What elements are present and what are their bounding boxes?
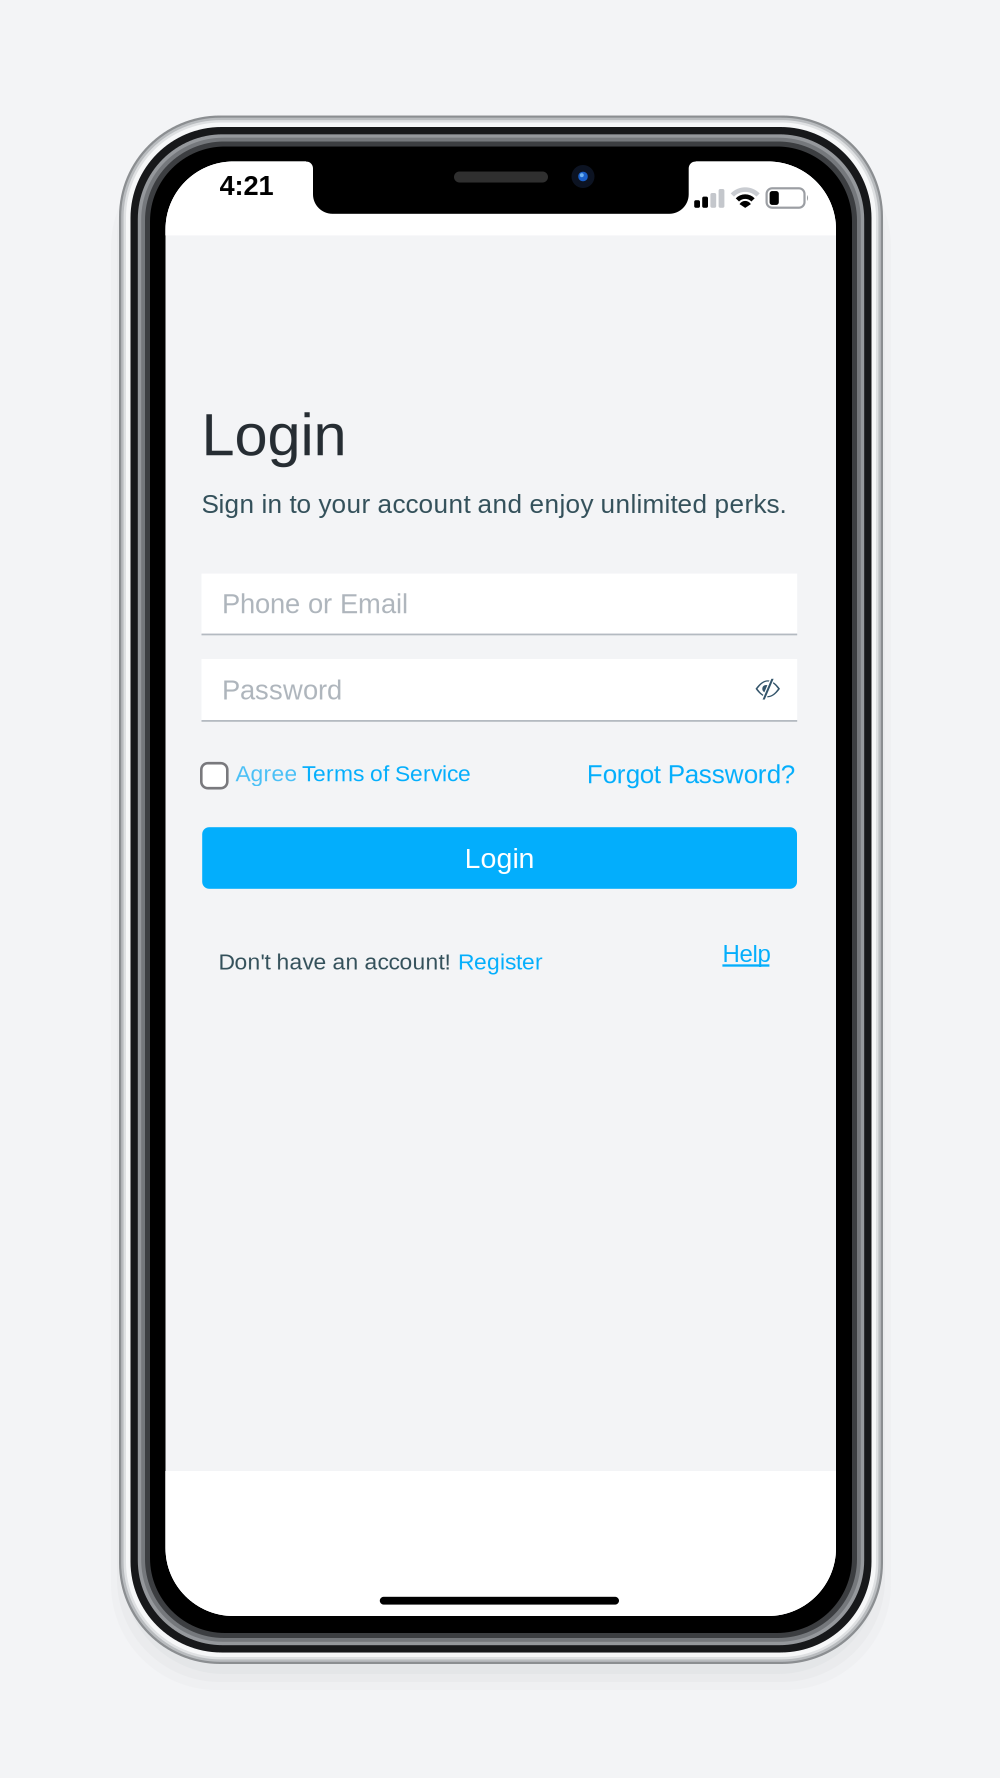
button[interactable]: Agree [200, 758, 540, 794]
button[interactable]: Forgot Password? [587, 760, 802, 792]
staticText: Login [465, 842, 535, 874]
button[interactable]: Show password [165, 161, 836, 1616]
staticText: Register [458, 949, 543, 974]
staticText: Phone or Email [222, 588, 408, 619]
staticText: Terms of Service [302, 761, 471, 786]
staticText: Forgot Password? [587, 760, 795, 789]
staticText: Password [222, 675, 342, 705]
staticText: Help [722, 940, 770, 967]
staticText: Login [201, 401, 346, 468]
staticText: Sign in to your account and enjoy unlimi… [202, 489, 787, 518]
button[interactable]: Don't have an account! [218, 951, 548, 983]
button[interactable]: Help [722, 945, 782, 979]
button[interactable]: Login [202, 827, 797, 889]
staticText: 4:21 [220, 170, 274, 201]
staticText: Agree [235, 761, 297, 786]
staticText: Don't have an account! [218, 949, 450, 974]
button[interactable]: Phone or Email [201, 574, 797, 635]
button[interactable]: Password [201, 659, 797, 722]
